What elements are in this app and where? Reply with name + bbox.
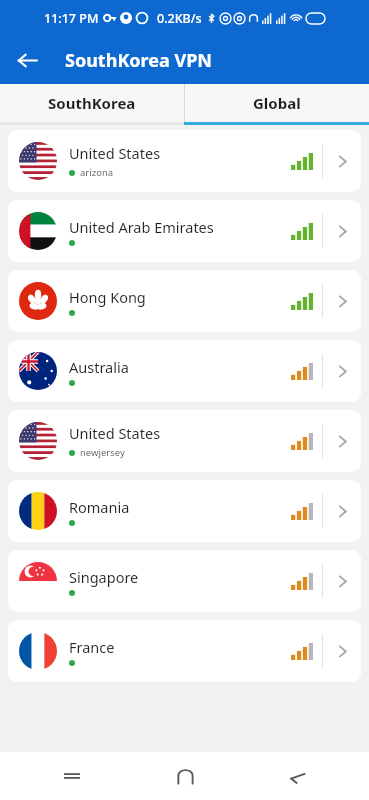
button[interactable]: Open Hong Kong [323, 270, 361, 332]
button[interactable]: SouthKorea [0, 84, 184, 122]
staticText: 11:17 PM [44, 10, 99, 27]
button[interactable]: Hong Kong [8, 270, 361, 332]
button[interactable]: Singapore [8, 550, 361, 612]
button[interactable]: France [8, 620, 361, 682]
button[interactable]: Global [185, 84, 369, 122]
staticText: 0.2KB/s [157, 10, 202, 27]
staticText: Australia [69, 357, 129, 377]
button[interactable]: Open Singapore [323, 550, 361, 612]
staticText: Hong Kong [69, 287, 146, 307]
staticText: United States [69, 143, 161, 163]
staticText: United States [69, 423, 161, 443]
staticText: Romania [69, 497, 130, 517]
button[interactable]: Open Romania [323, 480, 361, 542]
staticText: United Arab Emirates [69, 217, 214, 237]
button[interactable]: Australia [8, 340, 361, 402]
staticText: SouthKorea VPN [65, 48, 212, 73]
staticText: SouthKorea [48, 93, 136, 113]
button[interactable]: Open United Arab Emirates [323, 200, 361, 262]
button[interactable]: Romania [8, 480, 361, 542]
button[interactable]: Open United States [323, 130, 361, 192]
button[interactable]: Open France [323, 620, 361, 682]
button[interactable]: United States [8, 410, 361, 472]
staticText: arizona [80, 166, 114, 179]
button[interactable]: Home [165, 756, 205, 796]
button[interactable]: Back [8, 41, 46, 79]
button[interactable]: Recents [52, 756, 92, 796]
button[interactable]: Back [277, 756, 317, 796]
button[interactable]: United Arab Emirates [8, 200, 361, 262]
button[interactable]: Open United States [323, 410, 361, 472]
staticText: Singapore [69, 567, 139, 587]
button[interactable]: Open Australia [323, 340, 361, 402]
staticText: France [69, 637, 115, 657]
button[interactable]: United States [8, 130, 361, 192]
staticText: newjersey [80, 446, 125, 459]
staticText: Global [253, 93, 301, 113]
